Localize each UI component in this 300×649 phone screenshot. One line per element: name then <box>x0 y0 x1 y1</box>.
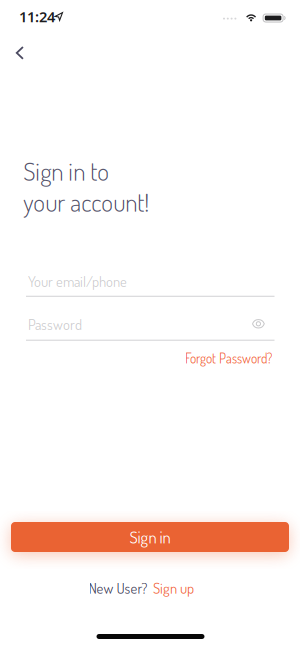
staticText: 11:24 <box>19 7 55 26</box>
staticText: Your email/phone <box>28 272 127 290</box>
staticText: Sign in to <box>23 155 109 187</box>
staticText: Forgot Password? <box>185 350 272 367</box>
button[interactable]: Your email/phone <box>26 268 274 297</box>
button[interactable]: Show password <box>248 315 269 332</box>
button[interactable]: Sign in <box>11 522 289 552</box>
staticText: Sign up <box>153 579 194 597</box>
staticText: Sign in <box>129 526 170 548</box>
button[interactable]: Sign up <box>153 579 194 597</box>
staticText: Password <box>28 315 82 333</box>
staticText: your account! <box>23 186 149 218</box>
button[interactable]: Back <box>5 37 35 69</box>
button[interactable]: Forgot Password? <box>185 350 272 367</box>
button[interactable]: Password <box>26 311 274 341</box>
staticText: New User? <box>88 579 147 597</box>
